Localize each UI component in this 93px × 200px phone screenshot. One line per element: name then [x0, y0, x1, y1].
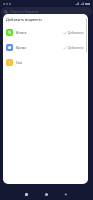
staticText: Добавлено [68, 46, 84, 50]
staticText: Добавлено [68, 31, 84, 35]
button[interactable]: Искать [3, 25, 88, 40]
staticText: Искать [16, 31, 27, 35]
staticText: Время [16, 46, 27, 50]
button[interactable]: Время [3, 40, 88, 55]
staticText: Stat [16, 61, 22, 65]
staticText: Добавить виджеты [6, 17, 42, 22]
button[interactable]: Поиск в Яндексе [1, 7, 92, 16]
button[interactable]: Recent apps [18, 186, 34, 200]
button[interactable]: Back [57, 186, 73, 200]
button[interactable]: Stat [3, 55, 88, 70]
button[interactable]: Home [38, 186, 54, 200]
staticText: Поиск в Яндексе [10, 9, 39, 14]
